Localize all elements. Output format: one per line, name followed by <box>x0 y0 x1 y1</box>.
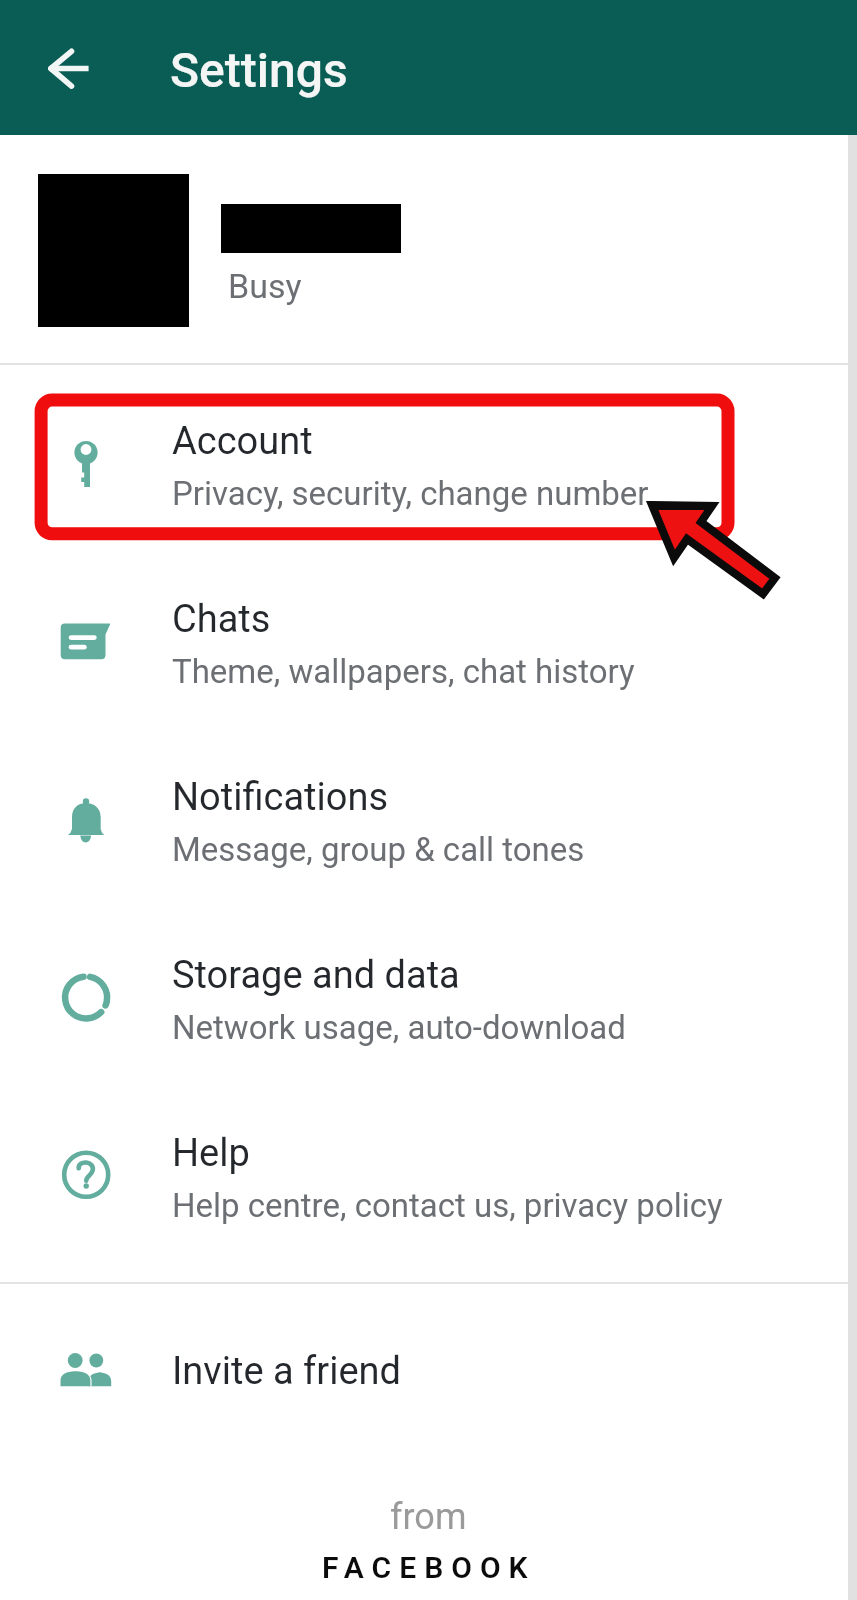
staticText: Invite a friend <box>172 1349 401 1394</box>
button[interactable]: Back <box>28 30 104 106</box>
staticText: Privacy, security, change number <box>172 474 649 513</box>
staticText: Notifications <box>172 775 389 820</box>
staticText: Busy <box>228 266 302 306</box>
button[interactable]: Chats <box>0 555 857 733</box>
staticText: from <box>390 1496 467 1538</box>
staticText: Network usage, auto-download <box>172 1008 626 1047</box>
button[interactable]: Busy <box>0 135 857 363</box>
button[interactable]: Invite a friend <box>0 1282 857 1460</box>
staticText: Theme, wallpapers, chat history <box>172 652 635 691</box>
staticText: Settings <box>170 42 348 98</box>
button[interactable]: Help <box>0 1089 857 1267</box>
staticText: Account <box>172 419 313 464</box>
staticText: Chats <box>172 597 271 642</box>
button[interactable]: Account <box>0 377 857 555</box>
button[interactable]: Notifications <box>0 733 857 911</box>
staticText: Message, group & call tones <box>172 830 585 869</box>
staticText: FACEBOOK <box>322 1550 536 1585</box>
staticText: Help <box>172 1131 250 1176</box>
staticText: Help centre, contact us, privacy policy <box>172 1186 723 1225</box>
staticText: Storage and data <box>172 953 460 998</box>
button[interactable]: Storage and data <box>0 911 857 1089</box>
